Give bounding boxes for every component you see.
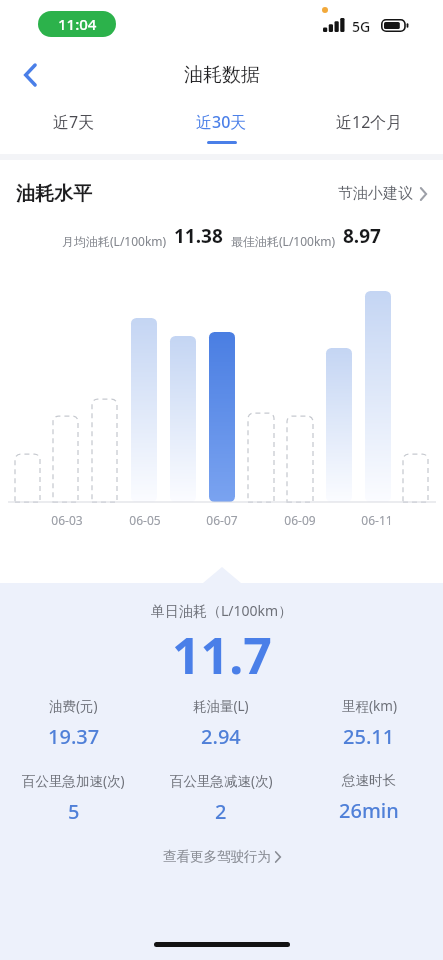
staticText: 06-03 bbox=[35, 512, 99, 528]
staticText: 油费(元) bbox=[49, 697, 98, 715]
staticText: 近12个月 bbox=[336, 111, 403, 133]
staticText: 怠速时长 bbox=[342, 772, 396, 789]
staticText: 11.38 bbox=[174, 223, 223, 249]
button[interactable]: 近30天 bbox=[147, 101, 295, 154]
staticText: 5 bbox=[68, 798, 80, 825]
staticText: 油耗数据 bbox=[184, 63, 260, 87]
staticText: 06-09 bbox=[268, 512, 332, 528]
button[interactable]: 查看更多驾驶行为 bbox=[153, 843, 291, 870]
staticText: 月均油耗(L/100km) bbox=[62, 233, 167, 249]
staticText: 单日油耗（L/100km） bbox=[151, 601, 293, 620]
staticText: 里程(km) bbox=[342, 697, 397, 715]
staticText: 近30天 bbox=[196, 111, 247, 133]
staticText: 8.97 bbox=[343, 223, 381, 249]
staticText: 26min bbox=[339, 797, 399, 824]
staticText: 油耗水平 bbox=[16, 182, 92, 206]
staticText: 百公里急加速(次) bbox=[22, 772, 125, 790]
staticText: 06-07 bbox=[190, 512, 254, 528]
staticText: 最佳油耗(L/100km) bbox=[231, 233, 336, 249]
button[interactable]: 近7天 bbox=[0, 101, 147, 154]
staticText: 节油小建议 bbox=[338, 184, 413, 203]
button[interactable]: 节油小建议 bbox=[338, 180, 427, 207]
staticText: 查看更多驾驶行为 bbox=[163, 848, 271, 865]
staticText: 19.37 bbox=[48, 723, 100, 750]
staticText: 2.94 bbox=[201, 723, 241, 750]
staticText: 耗油量(L) bbox=[193, 697, 249, 715]
staticText: 11:04 bbox=[58, 14, 97, 34]
button[interactable]: Back bbox=[8, 53, 52, 97]
staticText: 近7天 bbox=[53, 111, 95, 133]
staticText: 2 bbox=[215, 798, 227, 825]
staticText: 06-11 bbox=[345, 512, 409, 528]
staticText: 06-05 bbox=[113, 512, 177, 528]
button[interactable]: 近12个月 bbox=[295, 101, 443, 154]
staticText: 11.7 bbox=[172, 621, 272, 689]
staticText: 5G bbox=[352, 17, 371, 36]
staticText: 百公里急减速(次) bbox=[170, 772, 273, 790]
staticText: 25.11 bbox=[343, 723, 395, 750]
